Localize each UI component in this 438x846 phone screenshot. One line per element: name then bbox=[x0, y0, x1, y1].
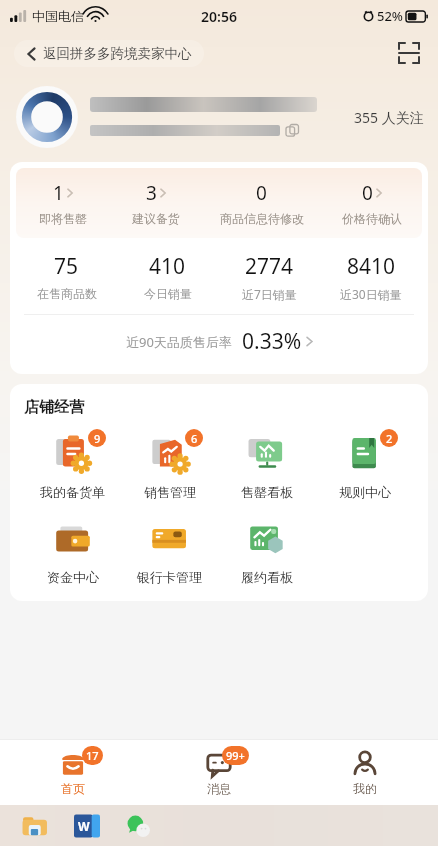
staticText: 410 bbox=[149, 252, 186, 281]
button[interactable]: 扫一扫 bbox=[392, 36, 426, 70]
button[interactable]: 返回拼多多跨境卖家中心 bbox=[14, 40, 204, 67]
staticText: 0 bbox=[362, 180, 373, 206]
button[interactable]: 8410 bbox=[320, 252, 422, 302]
staticText: 2 bbox=[386, 431, 393, 446]
staticText: 银行卡管理 bbox=[137, 569, 202, 585]
staticText: 52% bbox=[377, 7, 403, 25]
button[interactable]: 2774 bbox=[218, 252, 320, 302]
staticText: 我的 bbox=[353, 781, 377, 796]
staticText: 店铺经营 bbox=[24, 398, 84, 417]
staticText: 1 bbox=[53, 180, 64, 206]
staticText: 355 人关注 bbox=[354, 108, 424, 127]
staticText: 99+ bbox=[226, 748, 245, 763]
staticText: 建议备货 bbox=[132, 211, 180, 226]
staticText: 9 bbox=[94, 431, 101, 446]
button[interactable]: 2 bbox=[316, 431, 414, 500]
staticText: 资金中心 bbox=[47, 569, 99, 585]
staticText: 首页 bbox=[61, 781, 85, 796]
staticText: 规则中心 bbox=[339, 484, 391, 500]
staticText: W bbox=[78, 818, 90, 834]
staticText: 17 bbox=[86, 748, 99, 763]
button[interactable]: 0 bbox=[202, 180, 321, 226]
staticText: 销售管理 bbox=[144, 484, 196, 500]
staticText: 即将售罄 bbox=[39, 211, 87, 226]
staticText: 返回拼多多跨境卖家中心 bbox=[43, 45, 192, 62]
button[interactable]: 17 bbox=[0, 740, 146, 805]
staticText: 6 bbox=[191, 431, 198, 446]
button[interactable]: 银行卡管理 bbox=[121, 516, 218, 585]
button[interactable]: 微信 bbox=[126, 813, 152, 839]
button[interactable]: 售罄看板 bbox=[218, 431, 316, 500]
staticText: 2774 bbox=[245, 252, 294, 281]
staticText: 我的备货单 bbox=[40, 484, 105, 500]
staticText: 商品信息待修改 bbox=[220, 211, 304, 226]
staticText: 售罄看板 bbox=[241, 484, 293, 500]
staticText: 今日销量 bbox=[144, 286, 192, 301]
button[interactable]: 近90天品质售后率 bbox=[16, 315, 422, 368]
button[interactable] bbox=[16, 86, 78, 148]
staticText: 消息 bbox=[207, 781, 231, 796]
button[interactable]: Word bbox=[74, 813, 100, 839]
button[interactable]: 9 bbox=[24, 431, 121, 500]
staticText: 0 bbox=[256, 180, 267, 206]
button[interactable]: 资金中心 bbox=[24, 516, 121, 585]
staticText: 20:56 bbox=[201, 7, 237, 26]
button[interactable]: 我的 bbox=[292, 740, 438, 805]
staticText: 价格待确认 bbox=[342, 211, 402, 226]
button[interactable]: 复制 bbox=[286, 124, 299, 137]
button[interactable]: 6 bbox=[121, 431, 218, 500]
staticText: 0.33% bbox=[242, 327, 302, 356]
staticText: 75 bbox=[54, 252, 79, 281]
button[interactable]: 99+ bbox=[146, 740, 292, 805]
staticText: 8410 bbox=[347, 252, 396, 281]
staticText: 近90天品质售后率 bbox=[126, 333, 232, 351]
button[interactable]: 3 bbox=[109, 180, 202, 226]
staticText: 履约看板 bbox=[241, 569, 293, 585]
button[interactable]: 履约看板 bbox=[218, 516, 316, 585]
button[interactable]: 1 bbox=[16, 180, 109, 226]
staticText: 3 bbox=[146, 180, 157, 206]
staticText: 近30日销量 bbox=[340, 286, 402, 302]
staticText: 近7日销量 bbox=[242, 286, 297, 302]
button[interactable]: 75 bbox=[16, 252, 117, 301]
button[interactable]: 0 bbox=[321, 180, 422, 226]
button[interactable]: 文件资源管理器 bbox=[22, 813, 48, 839]
staticText: 在售商品数 bbox=[37, 286, 97, 301]
staticText: 中国电信 bbox=[32, 8, 84, 24]
button[interactable]: 410 bbox=[117, 252, 218, 301]
